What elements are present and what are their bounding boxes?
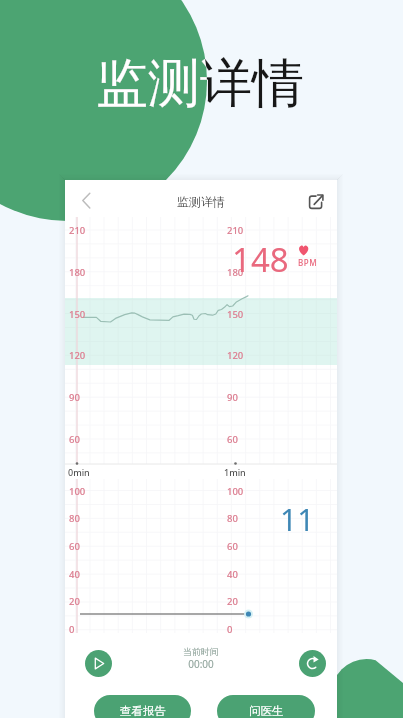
staticText: 0 [227,623,233,636]
staticText: 90 [227,391,238,404]
staticText: 60 [227,433,238,446]
staticText: 60 [69,540,80,553]
staticText: 150 [69,308,86,321]
staticText: 0 [69,623,75,636]
staticText: 20 [69,595,80,608]
staticText: 120 [69,349,86,362]
button[interactable]: Play [85,650,112,677]
staticText: 40 [227,568,238,581]
staticText: 监测详情 [96,51,304,117]
staticText: 150 [227,308,244,321]
staticText: 0min [68,466,90,478]
staticText: 11 [280,499,315,540]
staticText: 180 [227,266,244,279]
staticText: 80 [69,512,80,525]
staticText: 1min [224,466,246,478]
staticText: 60 [227,540,238,553]
staticText: 当前时间 [65,646,337,718]
staticText: 00:00 [65,657,337,718]
button[interactable]: Back [68,186,96,214]
staticText: 问医生 [249,704,284,718]
button[interactable]: Share [302,186,328,212]
staticText: 100 [227,485,244,498]
button[interactable]: Reset [299,650,326,677]
staticText: 210 [227,224,244,237]
staticText: 40 [69,568,80,581]
staticText: 监测详情 [96,51,207,117]
staticText: 148 [232,237,289,282]
staticText: 90 [69,391,80,404]
staticText: 80 [227,512,238,525]
button[interactable]: 问医生 [217,695,315,718]
staticText: BPM [298,257,318,268]
staticText: 监测详情 [65,194,337,718]
staticText: 120 [227,349,244,362]
staticText: 100 [69,485,86,498]
staticText: 180 [69,266,86,279]
button[interactable]: 查看报告 [94,695,191,718]
staticText: 查看报告 [120,704,166,718]
staticText: 60 [69,433,80,446]
staticText: 210 [69,224,86,237]
staticText: 20 [227,595,238,608]
